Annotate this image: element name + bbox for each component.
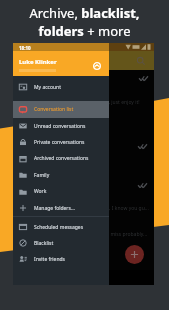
staticText: Luke Klinker <box>19 58 57 66</box>
button[interactable]: Manage folders... <box>13 200 109 216</box>
button[interactable]: Search <box>136 56 146 66</box>
staticText: Archive, blacklist, <box>29 4 140 22</box>
staticText: Unread conversations <box>34 123 86 130</box>
button[interactable]: Unread conversations <box>13 118 109 134</box>
button[interactable]: Scheduled messages <box>13 219 109 235</box>
staticText: folders + more <box>38 22 131 40</box>
button[interactable]: Family <box>13 167 109 183</box>
staticText: 18:10 <box>19 45 31 51</box>
button[interactable]: Conversation list <box>13 101 109 118</box>
staticText: d miss probably... <box>106 231 148 238</box>
staticText: Blacklist <box>34 240 54 247</box>
staticText: Scheduled messages <box>34 224 84 231</box>
staticText: Archived conversations <box>34 155 89 162</box>
staticText: My account <box>34 84 62 91</box>
staticText: Work <box>34 188 47 195</box>
button[interactable]: Invite friends <box>13 251 109 267</box>
staticText: Family <box>34 172 50 179</box>
staticText: Manage folders... <box>34 205 75 212</box>
button[interactable]: My account <box>13 79 109 95</box>
button[interactable]: Work <box>13 183 109 200</box>
staticText: Invite friends <box>34 256 65 263</box>
button[interactable]: Archived conversations <box>13 150 109 167</box>
staticText: Private conversations <box>34 139 85 146</box>
button[interactable]: New conversation <box>125 245 144 264</box>
staticText: Conversation list <box>34 106 74 113</box>
button[interactable]: Private conversations <box>13 134 109 150</box>
staticText: h, I know you gu... <box>106 205 149 212</box>
staticText: k, just enjoy it! <box>106 99 140 106</box>
button[interactable]: Account <box>93 62 101 70</box>
button[interactable]: Blacklist <box>13 235 109 251</box>
